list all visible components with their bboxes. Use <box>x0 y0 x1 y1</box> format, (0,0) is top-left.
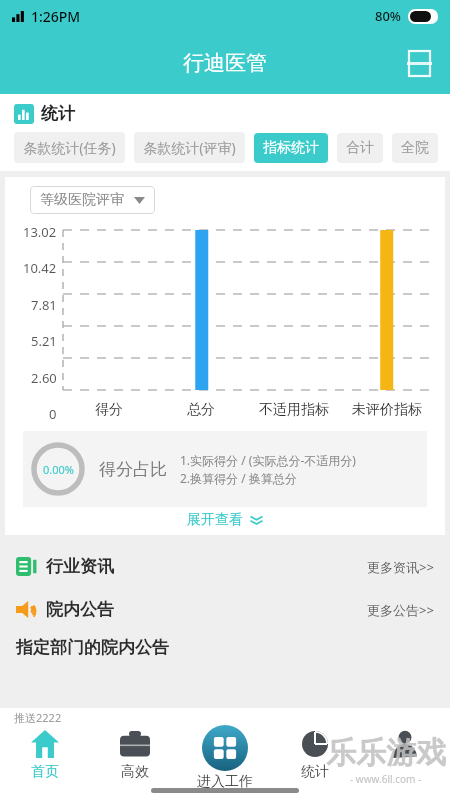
staticText: 等级医院评审 <box>40 191 124 209</box>
staticText: 乐乐游戏 <box>326 734 446 772</box>
staticText: 2.60 <box>31 369 57 387</box>
button[interactable]: Profile <box>360 725 450 763</box>
staticText: 1:26PM <box>31 7 81 26</box>
button[interactable]: 进入工作 <box>180 725 270 791</box>
button[interactable]: 展开查看 <box>5 511 445 529</box>
button[interactable]: 全院 <box>392 133 438 163</box>
staticText: 1.实际得分 / (实际总分-不适用分) <box>180 452 356 468</box>
staticText: - www.6ll.com - <box>350 772 422 786</box>
button[interactable]: 指标统计 <box>254 133 328 163</box>
button[interactable]: 首页 <box>0 725 90 781</box>
staticText: 行迪医管 <box>183 50 267 76</box>
staticText: 展开查看 <box>187 511 243 529</box>
staticText: 7.81 <box>31 296 57 314</box>
button[interactable]: 条款统计(评审) <box>134 132 245 163</box>
staticText: 13.02 <box>23 223 57 241</box>
staticText: 5.21 <box>31 332 57 350</box>
staticText: 院内公告 <box>46 599 114 620</box>
staticText: 全院 <box>401 139 429 157</box>
button[interactable]: 高效 <box>90 725 180 781</box>
staticText: 不适用指标 <box>259 401 329 419</box>
staticText: 2.换算得分 / 换算总分 <box>180 470 297 486</box>
button[interactable]: 统计 <box>270 725 360 781</box>
button[interactable]: 院内公告 <box>0 588 450 631</box>
staticText: 统计 <box>301 763 329 781</box>
staticText: 高效 <box>121 763 149 781</box>
staticText: 0.00% <box>43 462 74 477</box>
staticText: 0 <box>49 405 57 423</box>
button[interactable]: 等级医院评审 <box>30 186 155 214</box>
staticText: 行业资讯 <box>46 556 114 577</box>
staticText: 条款统计(任务) <box>23 138 116 157</box>
staticText: 合计 <box>346 139 374 157</box>
staticText: 条款统计(评审) <box>143 138 236 157</box>
button[interactable]: Split screen <box>398 42 440 84</box>
staticText: 得分 <box>95 401 123 419</box>
staticText: 进入工作 <box>197 773 253 791</box>
staticText: 指定部门的院内公告 <box>16 637 169 658</box>
staticText: 统计 <box>41 103 75 124</box>
staticText: 得分占比 <box>99 459 167 480</box>
staticText: 推送2222 <box>14 710 62 725</box>
staticText: 更多公告>> <box>367 601 434 619</box>
staticText: 总分 <box>187 401 215 419</box>
staticText: 指标统计 <box>263 139 319 157</box>
staticText: 10.42 <box>23 259 57 277</box>
button[interactable]: 条款统计(任务) <box>14 132 125 163</box>
button[interactable]: 行业资讯 <box>0 545 450 588</box>
button[interactable]: 合计 <box>337 133 383 163</box>
staticText: 首页 <box>31 763 59 781</box>
staticText: 80% <box>375 7 401 25</box>
staticText: 未评价指标 <box>352 401 422 419</box>
staticText: 更多资讯>> <box>367 558 434 576</box>
